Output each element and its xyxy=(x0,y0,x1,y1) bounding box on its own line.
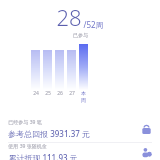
staticText: 使用 39 张随机金 xyxy=(8,143,47,150)
other: Rewards xyxy=(139,122,153,136)
button[interactable]: 已经参与 39 笔 xyxy=(0,115,160,142)
staticText: 27 xyxy=(69,90,75,97)
staticText: 本周 xyxy=(79,90,88,104)
staticText: 25 xyxy=(45,90,51,97)
staticText: 已参与 xyxy=(73,32,88,38)
button[interactable] xyxy=(79,44,88,90)
staticText: 累计抵现 111.93 元 xyxy=(8,152,78,160)
button[interactable]: 使用 39 张随机金 xyxy=(0,143,160,160)
button[interactable] xyxy=(67,50,76,90)
staticText: 26 xyxy=(57,90,63,97)
button[interactable] xyxy=(31,50,40,90)
staticText: /52周 xyxy=(83,19,104,30)
button[interactable] xyxy=(43,50,52,90)
button[interactable] xyxy=(55,50,64,90)
staticText: 已经参与 39 笔 xyxy=(8,119,42,126)
staticText: 参考总回报 3931.37 元 xyxy=(8,128,90,139)
other: Coupon xyxy=(139,145,153,159)
staticText: 24 xyxy=(33,90,39,97)
staticText: 28 xyxy=(56,2,82,32)
